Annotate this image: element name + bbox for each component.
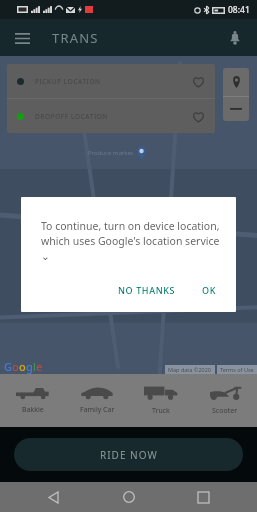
staticText: Produce market [88,149,134,157]
staticText: OK [202,284,216,296]
button[interactable]: Recent apps [183,482,223,512]
staticText: l [33,359,36,374]
button[interactable]: Bakkie [0,374,65,427]
staticText: To continue, turn on device location, wh… [41,219,220,262]
button[interactable]: Terms of Use [220,366,254,373]
button[interactable]: Notifications [221,24,249,52]
staticText: Scooter [212,406,238,416]
staticText: TRANS [52,29,99,47]
staticText: 08:41 [228,4,250,16]
staticText: DROPOFF LOCATION [35,112,108,121]
staticText: o [19,359,26,374]
staticText: o [12,359,19,374]
button[interactable]: Scooter [193,374,257,427]
button[interactable]: DROPOFF LOCATION [7,99,215,133]
button[interactable]: Back [34,482,74,512]
staticText: Bakkie [22,405,44,415]
staticText: e [36,359,43,374]
staticText: NO THANKS [118,284,176,296]
button[interactable]: Home [109,482,149,512]
staticText: Map data ©2020 [168,366,212,373]
button[interactable]: RIDE NOW [14,438,243,471]
staticText: Terms of Use [220,366,254,373]
button[interactable]: Open navigation menu [8,24,36,52]
staticText: PICKUP LOCATION [35,77,101,86]
button[interactable]: NO THANKS [110,278,184,302]
staticText: G [4,359,12,374]
button[interactable]: PICKUP LOCATION [7,64,215,98]
staticText: RIDE NOW [100,448,158,462]
button[interactable]: Family Car [65,374,129,427]
staticText: g [26,359,33,374]
button[interactable]: My location [223,68,249,96]
button[interactable]: Zoom out [223,97,249,121]
staticText: Family Car [80,405,115,415]
button[interactable]: OK [194,278,224,302]
button[interactable]: Truck [129,374,193,427]
staticText: Truck [152,406,170,416]
